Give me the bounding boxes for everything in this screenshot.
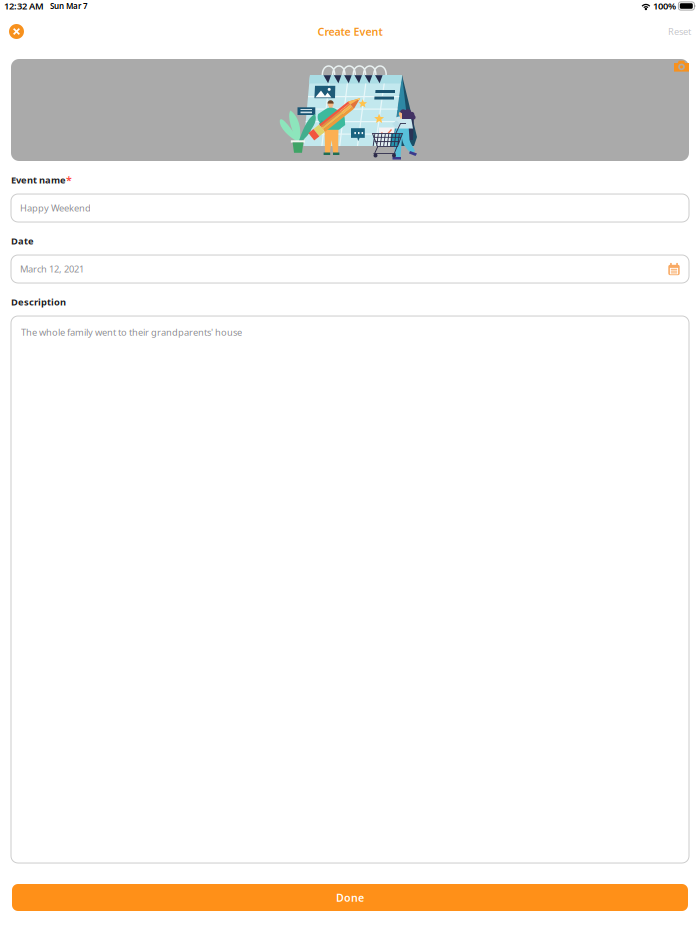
staticText: Event name	[11, 174, 66, 186]
button[interactable]: March 12, 2021	[11, 255, 689, 283]
button[interactable]: Change cover photo	[668, 59, 689, 78]
staticText: 12:32 AM	[4, 0, 44, 12]
staticText: Description	[11, 296, 66, 308]
button[interactable]: Happy Weekend	[11, 194, 689, 222]
button[interactable]: Done	[12, 884, 688, 911]
button[interactable]: The whole family went to their grandpare…	[11, 316, 689, 863]
staticText: Happy Weekend	[20, 202, 91, 214]
button[interactable]: Reset	[659, 19, 700, 44]
staticText: Create Event	[317, 24, 382, 39]
staticText: The whole family went to their grandpare…	[21, 326, 242, 338]
staticText: Sun Mar 7	[50, 1, 88, 11]
staticText: March 12, 2021	[20, 263, 84, 275]
staticText: Done	[336, 890, 364, 905]
staticText: Reset	[668, 25, 691, 38]
button[interactable]: Close	[0, 18, 33, 45]
staticText: *	[66, 173, 72, 187]
staticText: Date	[11, 235, 34, 247]
staticText: 100%	[653, 0, 676, 12]
